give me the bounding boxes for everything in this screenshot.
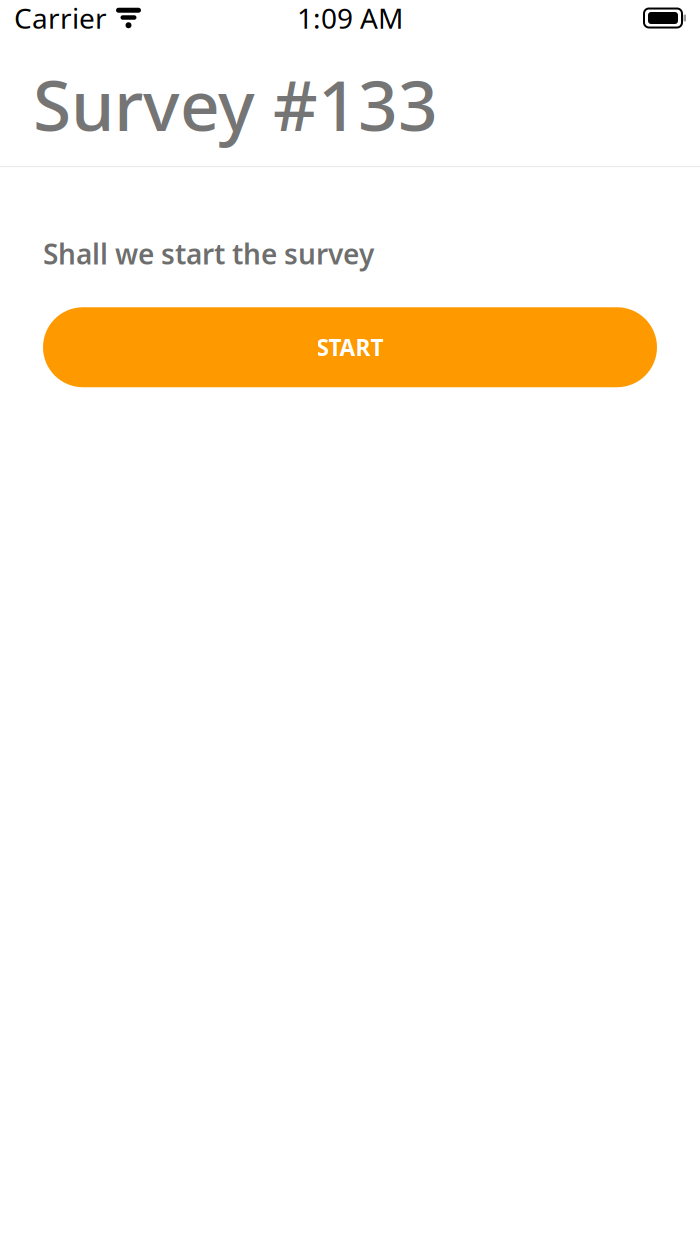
- staticText: 1:09 AM: [297, 0, 403, 37]
- staticText: Shall we start the survey: [43, 235, 374, 272]
- staticText: Survey #133: [33, 58, 438, 150]
- button[interactable]: START: [43, 307, 657, 387]
- staticText: Carrier: [14, 0, 107, 37]
- staticText: START: [316, 332, 383, 362]
